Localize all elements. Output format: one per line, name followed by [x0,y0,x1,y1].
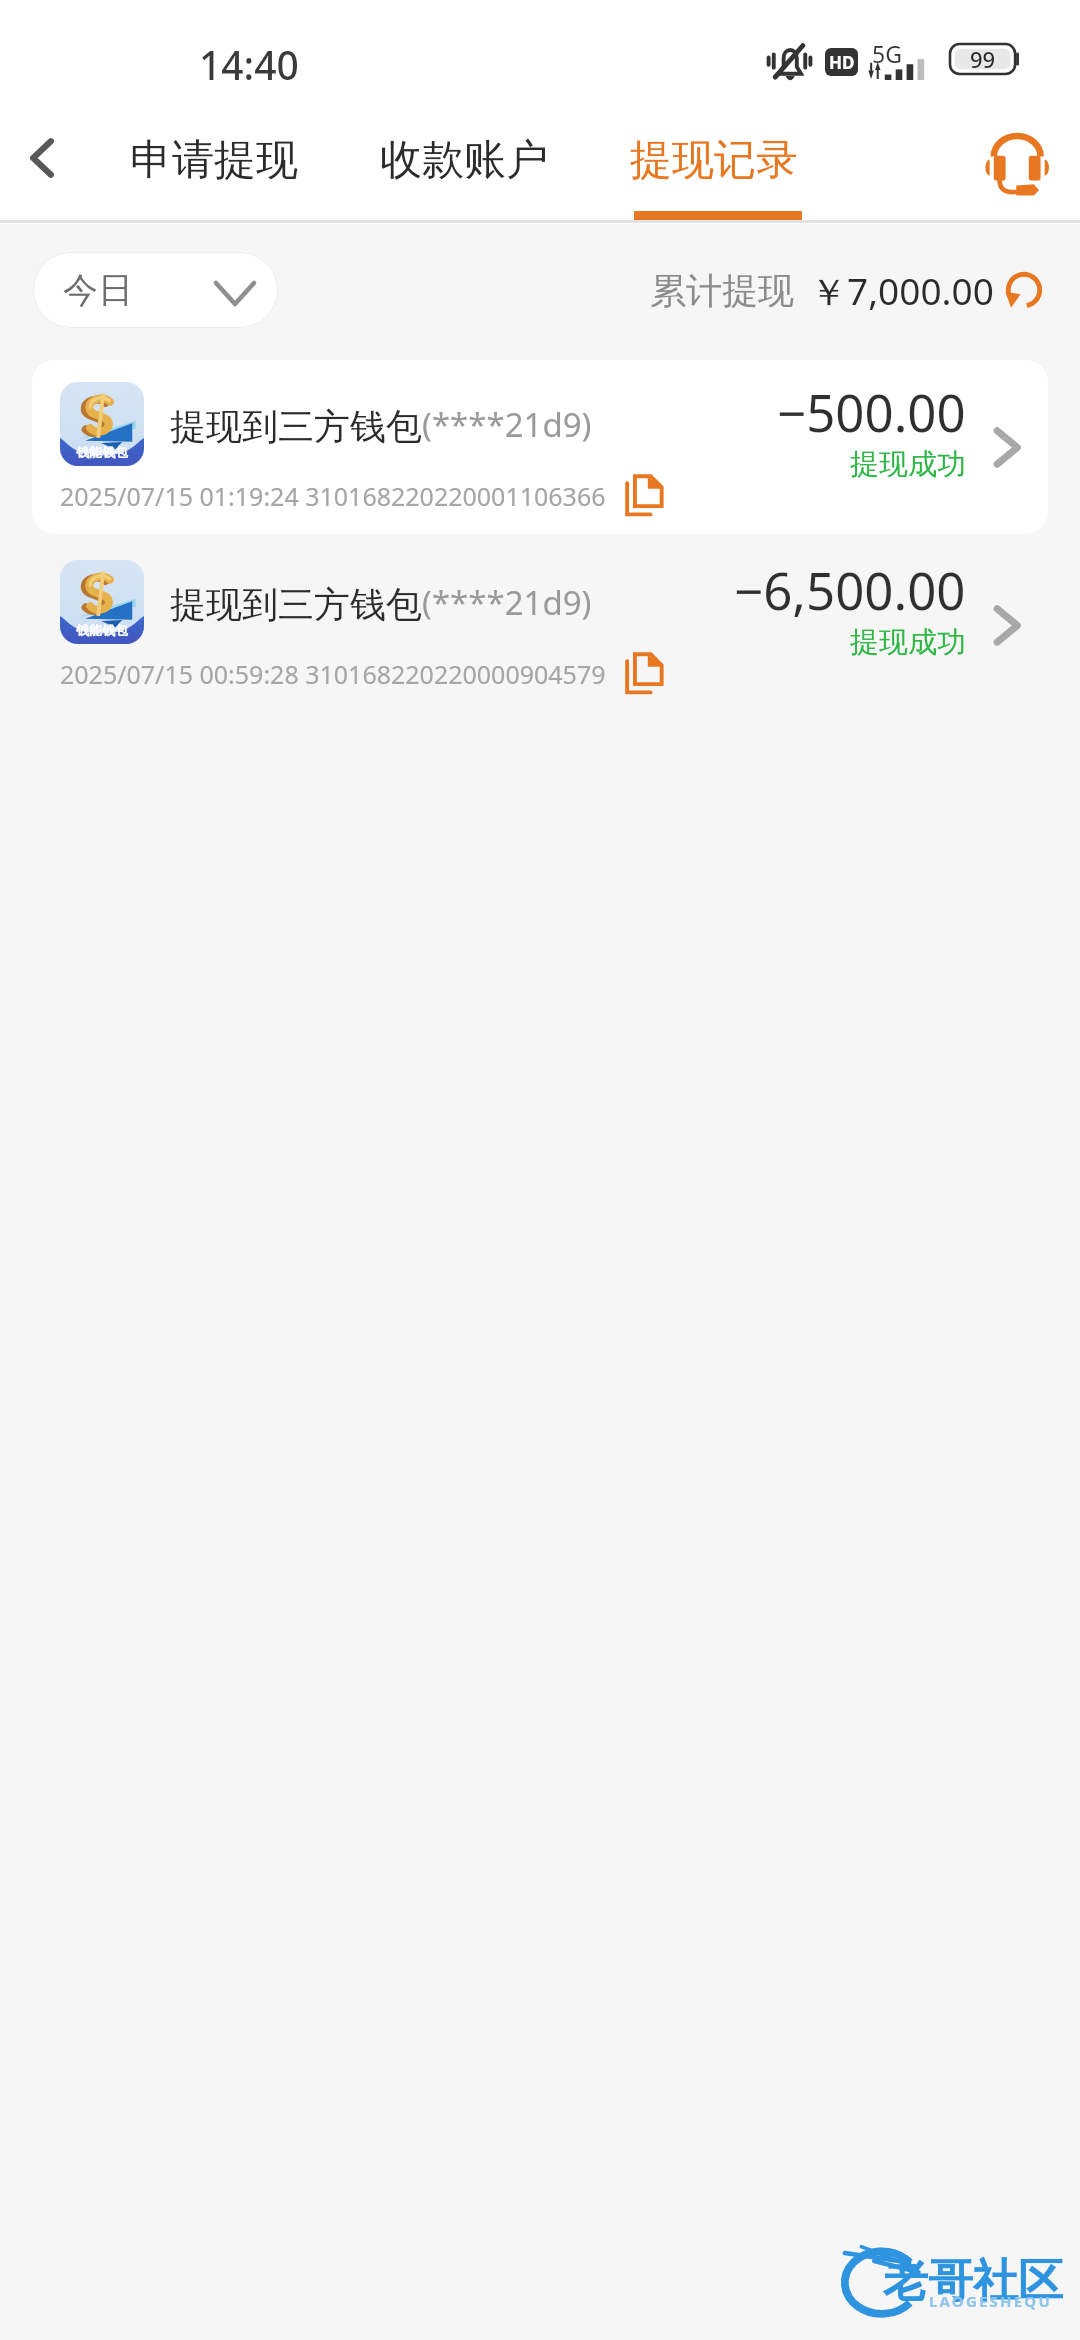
button[interactable]: Copy [620,470,672,522]
staticText: 2025/07/15 00:59:28 31016822022000090457… [60,657,606,691]
button[interactable]: 钱能钱包 [32,538,1048,712]
staticText: LAOGESHEQU [929,2291,1052,2311]
staticText: 提现成功 [850,446,966,483]
staticText: HD [829,51,855,74]
staticText: 提现成功 [850,624,966,661]
button[interactable]: 收款账户 [366,134,562,218]
staticText: 累计提现 [650,268,794,313]
staticText: 提现记录 [630,134,798,187]
staticText: 2025/07/15 01:19:24 31016822022000110636… [60,479,606,513]
staticText: −500.00 [777,377,966,446]
staticText: 提现到三方钱包 [170,582,422,627]
staticText: 提现到三方钱包 [170,404,422,449]
staticText: 今日 [63,268,133,312]
button[interactable]: 今日 [33,252,278,328]
staticText: 老哥社区 [883,2253,1063,2310]
staticText: −6,500.00 [734,555,966,624]
button[interactable]: 申请提现 [116,134,312,218]
staticText: 钱能钱包 [76,622,128,638]
button[interactable]: Customer service [972,117,1062,207]
button[interactable]: Back [8,124,76,192]
staticText: 申请提现 [130,134,298,187]
staticText: 99 [970,44,996,74]
button[interactable]: 提现记录 [616,134,812,218]
staticText: (****21d9) [422,402,592,447]
button[interactable]: Refresh [998,264,1050,316]
staticText: 钱能钱包 [76,444,128,460]
button[interactable]: Copy [620,648,672,700]
button[interactable]: 钱能钱包 [32,360,1048,534]
staticText: 收款账户 [380,134,548,187]
staticText: 5G [872,38,902,69]
staticText: (****21d9) [422,580,592,625]
staticText: 14:40 [199,38,299,91]
staticText: ￥7,000.00 [810,265,994,316]
